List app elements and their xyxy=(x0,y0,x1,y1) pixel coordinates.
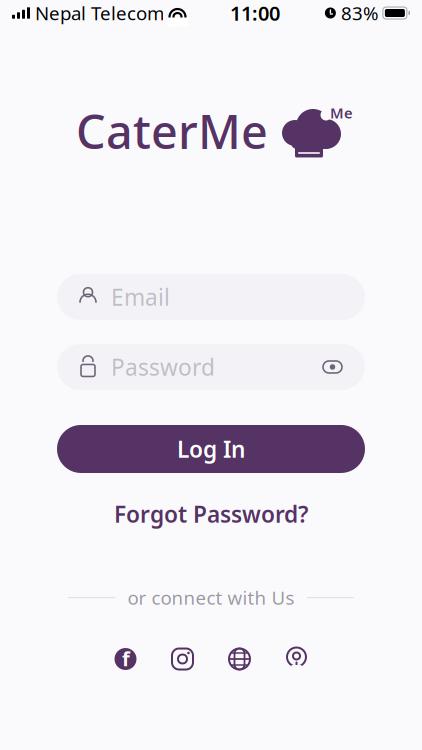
staticText: Me xyxy=(330,103,353,122)
staticText: Password xyxy=(111,352,215,382)
staticText: Forgot Password? xyxy=(114,499,308,529)
staticText: 11:00 xyxy=(230,0,280,26)
button[interactable]: Show password xyxy=(322,360,343,374)
button[interactable]: Facebook xyxy=(113,647,137,671)
staticText: Nepal Telecom xyxy=(35,1,164,25)
staticText: Email xyxy=(111,282,170,312)
button[interactable]: Location xyxy=(284,646,308,672)
staticText: or connect with Us xyxy=(127,585,294,610)
button[interactable]: Website xyxy=(227,647,251,671)
staticText: Log In xyxy=(177,434,245,464)
button[interactable]: Log In xyxy=(57,425,365,473)
staticText: CaterMe xyxy=(76,100,268,162)
staticText: 83% xyxy=(341,1,379,25)
staticText: f xyxy=(122,645,130,672)
button[interactable]: Instagram xyxy=(170,647,194,671)
button[interactable]: Forgot Password? xyxy=(102,495,320,533)
